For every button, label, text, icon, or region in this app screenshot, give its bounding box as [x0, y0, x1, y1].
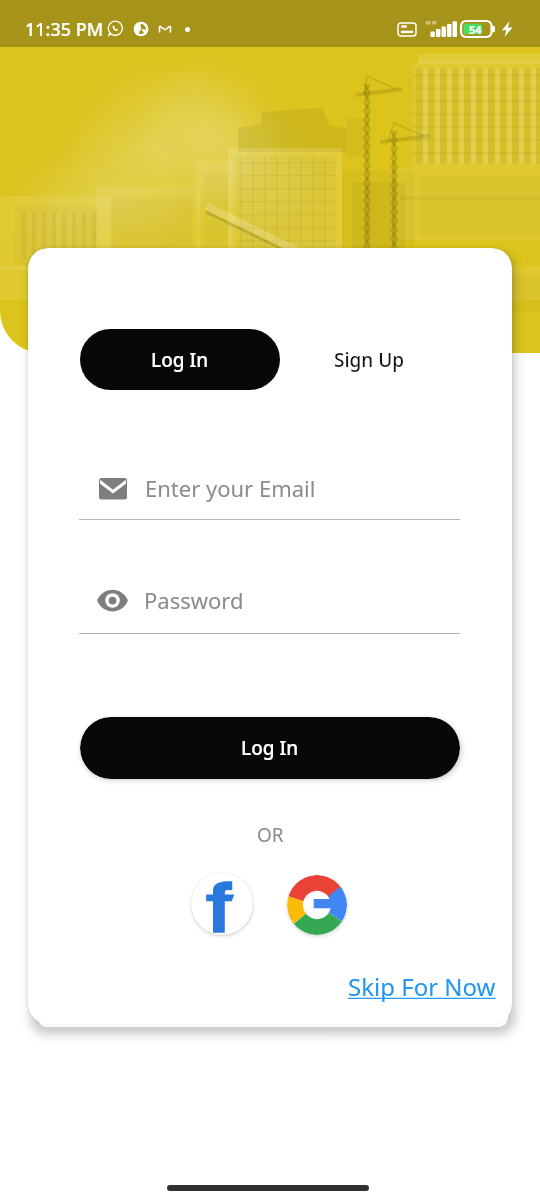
staticText: Enter your Email	[145, 473, 316, 503]
staticText: Skip For Now	[348, 970, 496, 1003]
button[interactable]: Log In	[80, 329, 280, 390]
button[interactable]: Sign in with Google	[287, 875, 347, 935]
button[interactable]: Sign in with Facebook	[191, 873, 253, 935]
button[interactable]: Skip For Now	[348, 970, 496, 1003]
staticText: 54	[469, 22, 482, 37]
button[interactable]: Sign Up	[294, 329, 444, 390]
staticText: Sign Up	[334, 347, 405, 373]
staticText: Log In	[151, 347, 209, 373]
staticText: OR	[257, 822, 284, 848]
button[interactable]: Log In	[80, 717, 460, 779]
staticText: Log In	[241, 735, 299, 761]
staticText: 11:35 PM	[25, 17, 104, 42]
staticText: Password	[144, 585, 244, 615]
